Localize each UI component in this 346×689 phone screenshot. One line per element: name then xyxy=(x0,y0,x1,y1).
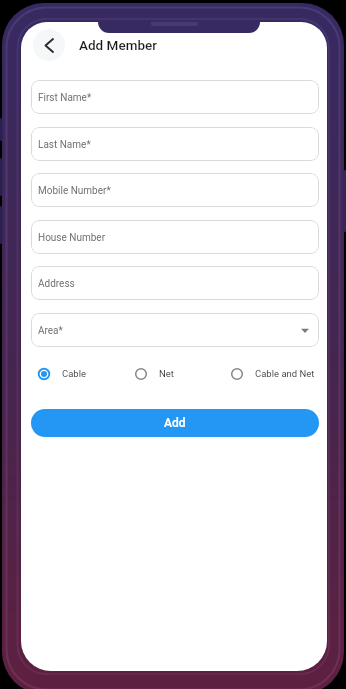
staticText: First Name* xyxy=(38,92,92,104)
staticText: Address xyxy=(38,278,75,290)
staticText: Last Name* xyxy=(38,139,91,151)
staticText: Cable and Net xyxy=(255,368,315,379)
button[interactable]: Cable and Net xyxy=(231,364,315,383)
staticText: Cable xyxy=(62,368,87,379)
staticText: House Number xyxy=(38,232,106,244)
button[interactable]: Add xyxy=(31,409,319,437)
button[interactable]: Area* xyxy=(31,313,319,347)
button[interactable]: Mobile Number* xyxy=(31,173,319,207)
staticText: Add xyxy=(164,416,186,430)
button[interactable]: Last Name* xyxy=(31,127,319,161)
button[interactable]: House Number xyxy=(31,220,319,254)
button[interactable] xyxy=(33,29,65,61)
button[interactable]: Address xyxy=(31,266,319,300)
button[interactable]: First Name* xyxy=(31,80,319,114)
staticText: Add Member xyxy=(79,37,158,53)
staticText: Mobile Number* xyxy=(38,185,111,197)
button[interactable]: Net xyxy=(135,364,174,383)
button[interactable]: Cable xyxy=(38,364,87,383)
staticText: Area* xyxy=(38,325,63,337)
staticText: Net xyxy=(159,368,174,379)
